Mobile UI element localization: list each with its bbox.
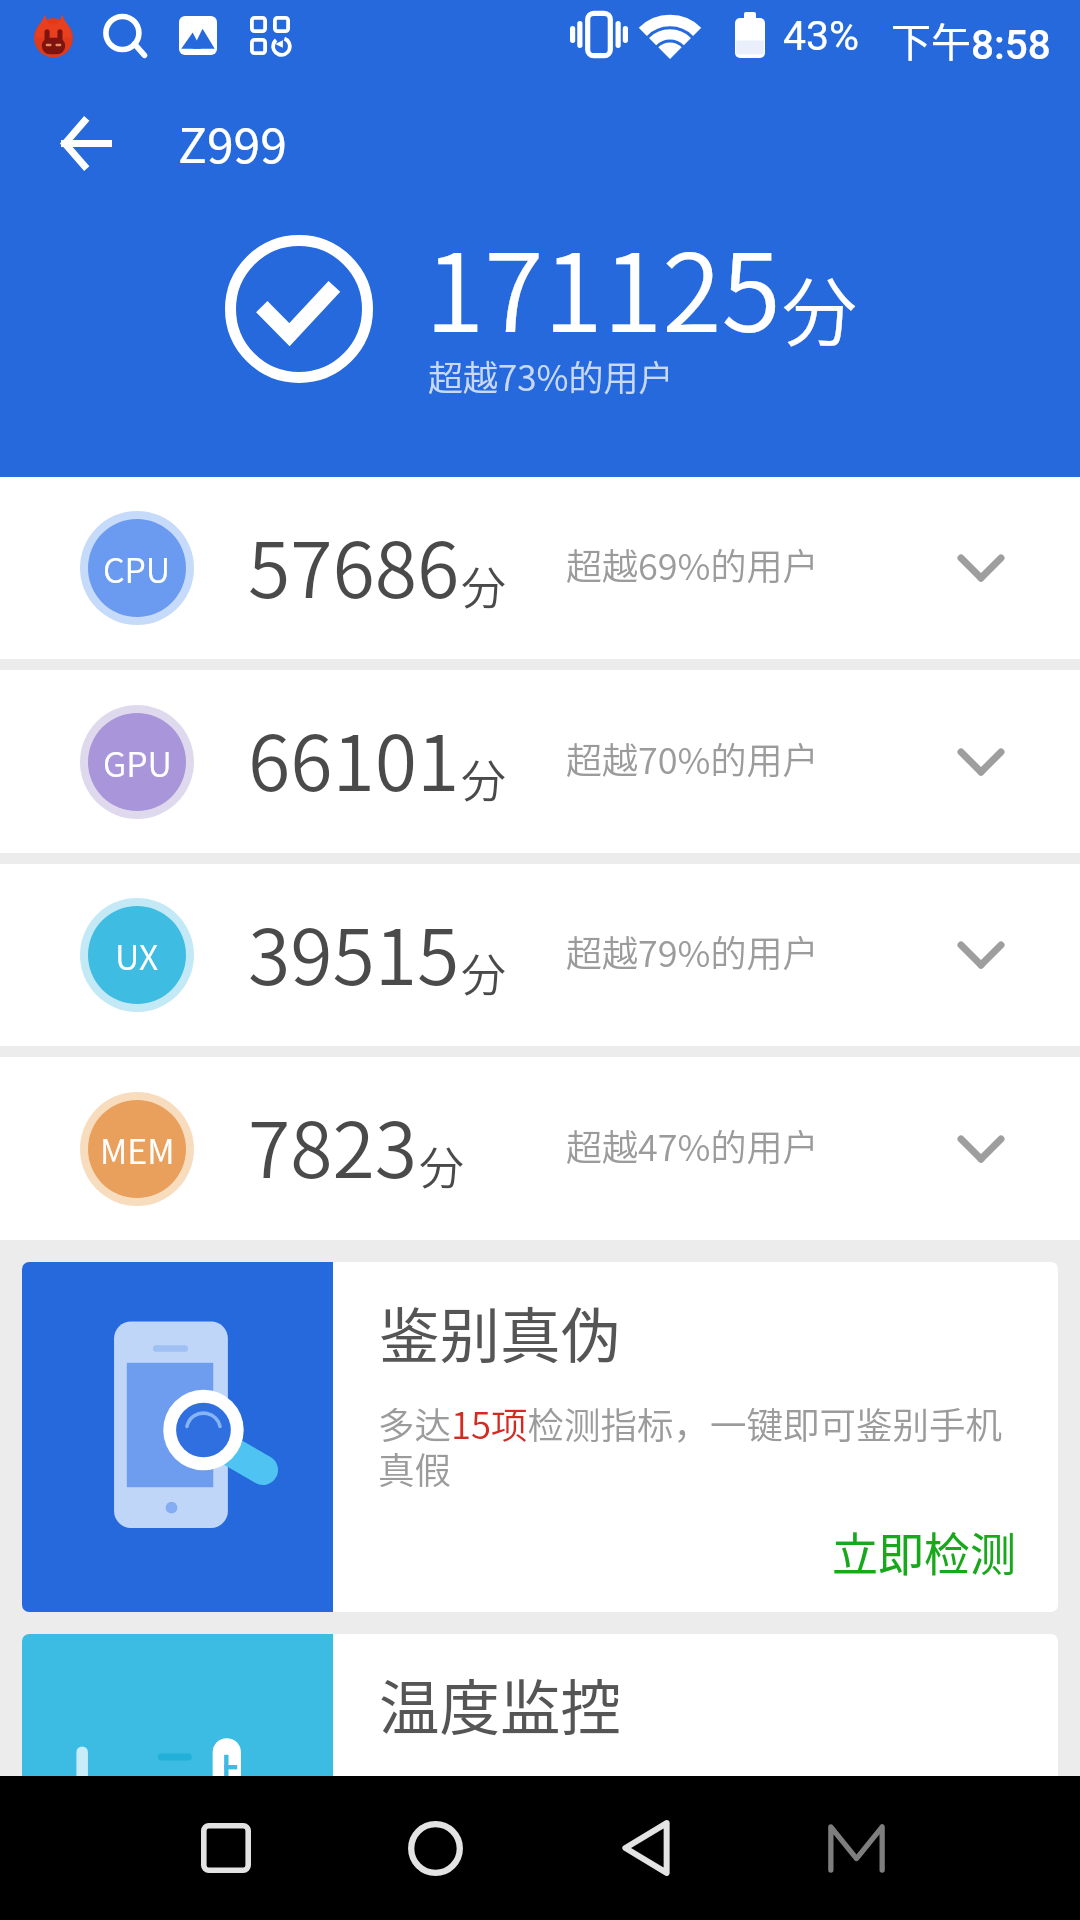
button[interactable]: Back	[34, 91, 138, 195]
button[interactable]: Recents	[161, 1776, 291, 1920]
staticText: GPU	[103, 738, 172, 787]
button[interactable]: 鉴别真伪	[22, 1262, 1058, 1612]
staticText: CPU	[103, 544, 171, 593]
staticText: MEM	[100, 1125, 175, 1174]
button[interactable]: Back	[581, 1776, 711, 1920]
staticText: 温度监控	[379, 1660, 621, 1748]
staticText: 57686	[248, 509, 460, 620]
staticText: 分	[419, 1133, 465, 1198]
button[interactable]: Expand	[943, 530, 1019, 606]
staticText: 分	[782, 253, 858, 362]
staticText: 超越47%的用户	[566, 1119, 819, 1171]
staticText: 下午	[891, 11, 971, 69]
staticText: 分	[461, 553, 507, 618]
staticText: 超越79%的用户	[566, 925, 819, 977]
staticText: 超越70%的用户	[566, 732, 819, 784]
staticText: 7823	[248, 1089, 418, 1200]
button[interactable]: Expand	[943, 1111, 1019, 1187]
button[interactable]: UX	[0, 864, 1080, 1046]
staticText: UX	[115, 931, 159, 980]
staticText: 171125	[425, 207, 781, 363]
staticText: 43%	[783, 12, 860, 60]
staticText: 8:58	[971, 21, 1051, 68]
button[interactable]: Expand	[943, 724, 1019, 800]
button[interactable]: Expand	[943, 917, 1019, 993]
staticText: 多达15项检测指标，一键即可鉴别手机真假	[378, 1397, 1018, 1495]
button[interactable]: CPU	[0, 477, 1080, 659]
staticText: 超越73%的用户	[428, 350, 674, 401]
staticText: 鉴别真伪	[379, 1288, 621, 1376]
staticText: 66101	[248, 702, 460, 813]
button[interactable]: MEM	[0, 1057, 1080, 1240]
staticText: Z999	[178, 107, 287, 177]
button[interactable]: GPU	[0, 670, 1080, 853]
staticText: 立即检测	[832, 1518, 1016, 1585]
button[interactable]: Menu	[791, 1776, 921, 1920]
staticText: 39515	[248, 896, 460, 1007]
staticText: 分	[461, 746, 507, 811]
staticText: 超越69%的用户	[566, 538, 819, 590]
staticText: 分	[461, 940, 507, 1005]
button[interactable]: Home	[370, 1776, 500, 1920]
button[interactable]: 温度监控	[22, 1634, 1058, 1834]
